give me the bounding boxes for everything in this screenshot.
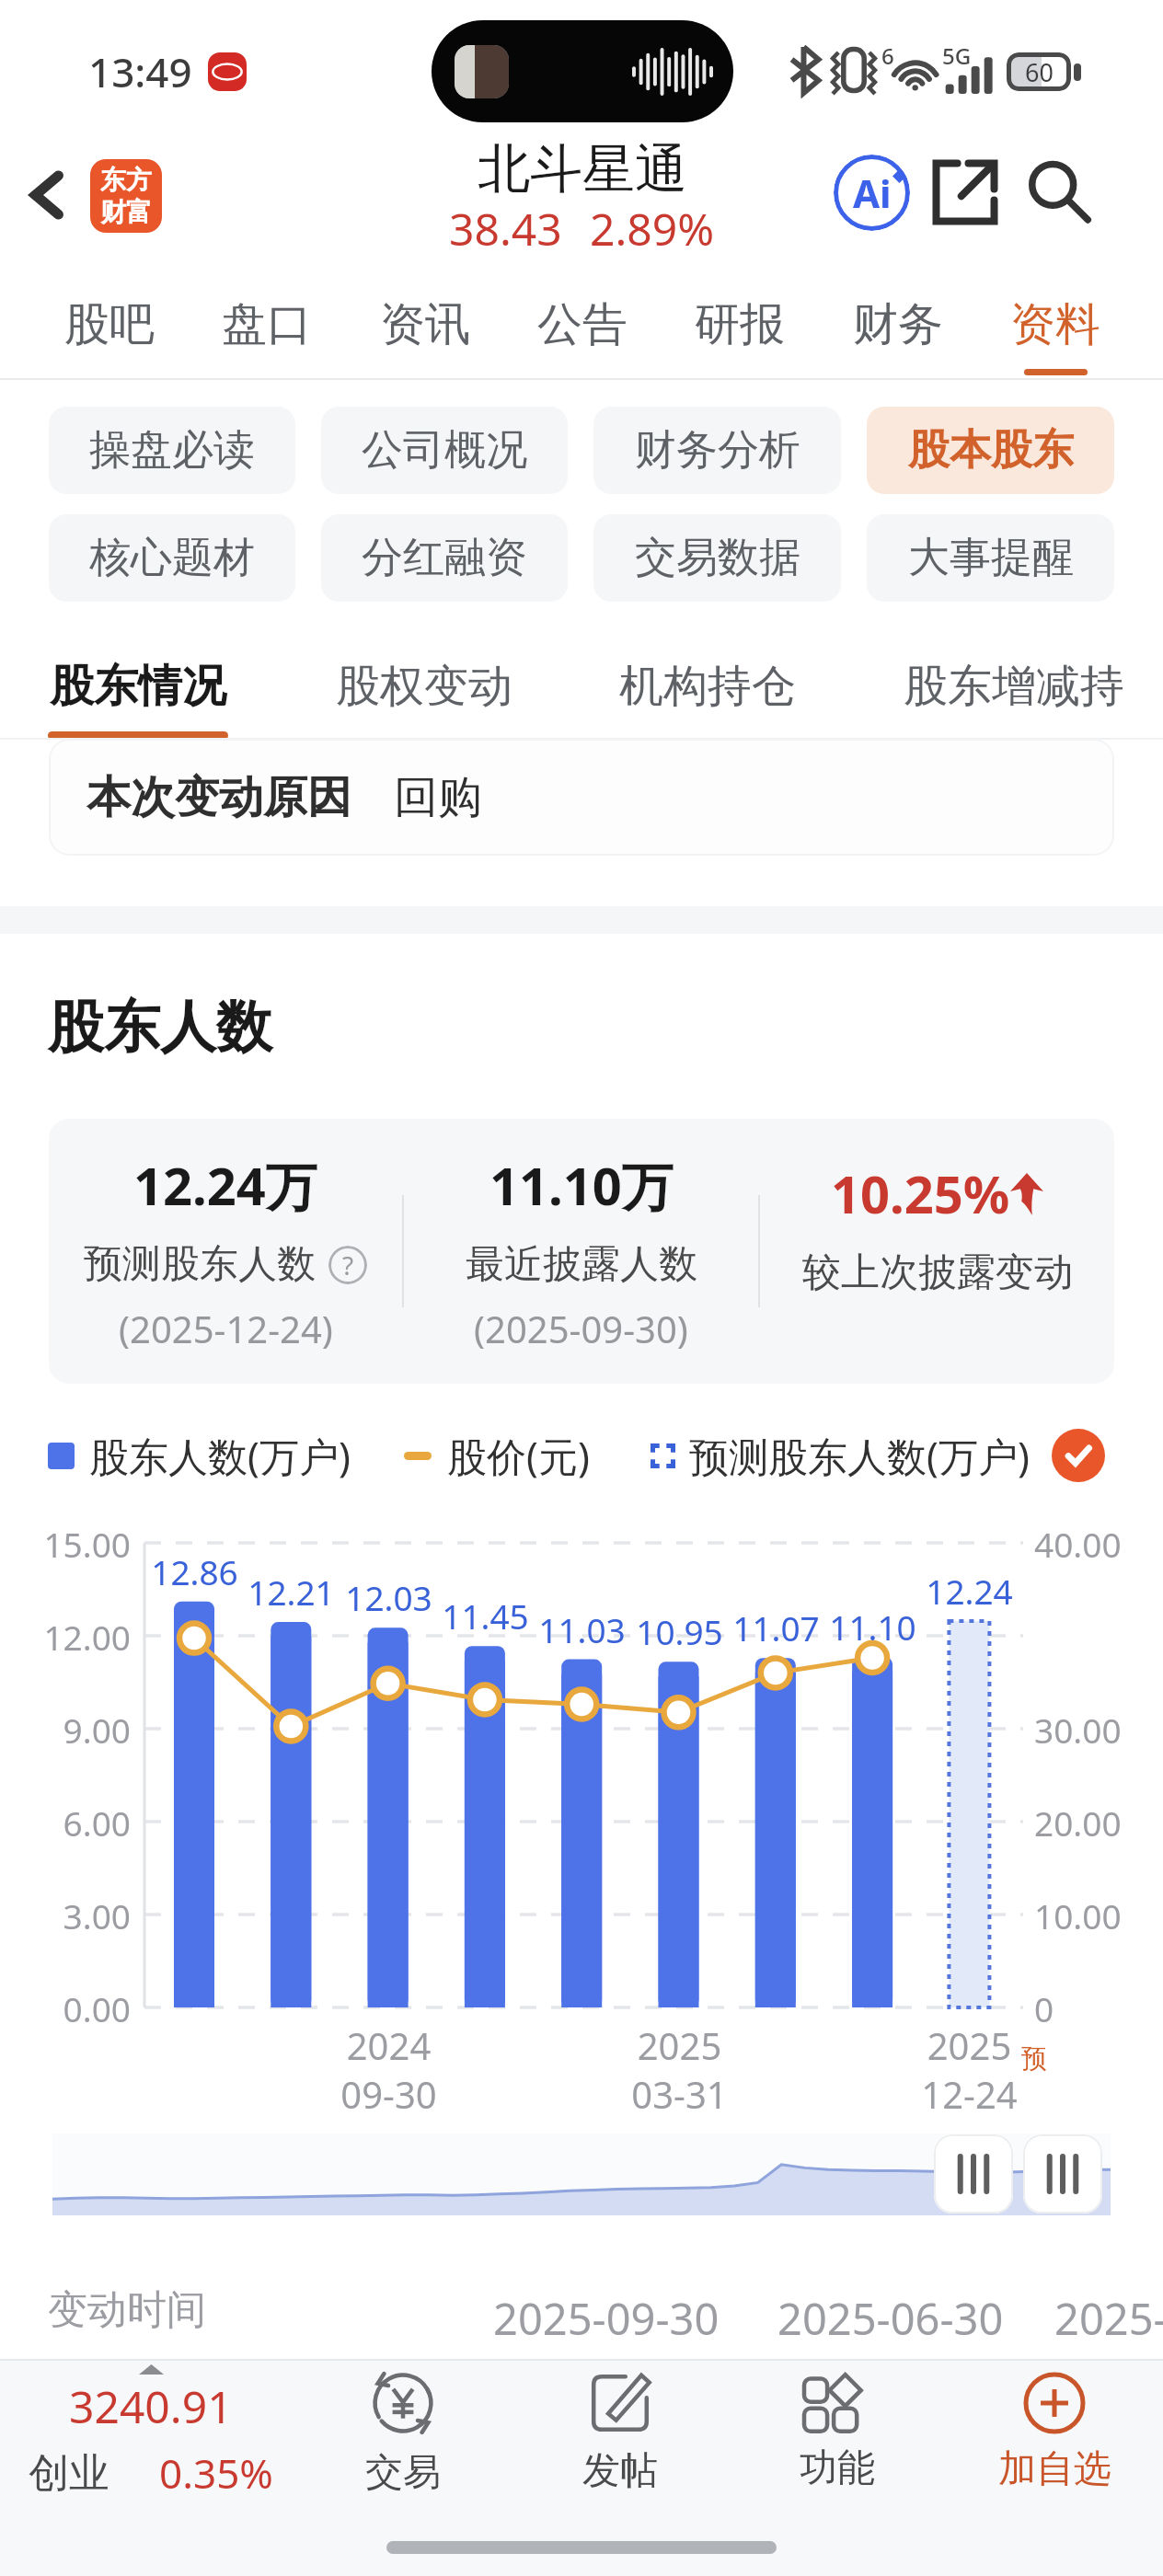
staticText: 公告 bbox=[537, 296, 628, 353]
button[interactable]: Help bbox=[328, 1246, 367, 1284]
staticText: 机构持仓 bbox=[619, 659, 796, 714]
staticText: 股东增减持 bbox=[904, 659, 1124, 714]
button[interactable]: 机构持仓 bbox=[619, 644, 796, 740]
staticText: 38.43 bbox=[449, 199, 562, 259]
staticText: 本次变动原因 bbox=[86, 770, 351, 825]
staticText: 操盘必读 bbox=[89, 424, 255, 477]
staticText: 北斗星通 bbox=[478, 136, 687, 202]
staticText: 核心题材 bbox=[89, 532, 255, 584]
button[interactable]: 股权变动 bbox=[336, 644, 512, 740]
staticText: 0.35% bbox=[159, 2445, 273, 2501]
staticText: 较上次披露变动 bbox=[802, 1248, 1073, 1297]
staticText: 9.00 bbox=[63, 1707, 131, 1753]
staticText: 6 bbox=[881, 40, 894, 71]
staticText: 预测股东人数(万户) bbox=[689, 1429, 1030, 1483]
staticText: 5G bbox=[942, 40, 972, 71]
staticText: 10.25% bbox=[831, 1158, 1010, 1228]
staticText: (2025-09-30) bbox=[474, 1304, 688, 1353]
staticText: 创业 bbox=[29, 2448, 109, 2499]
button[interactable]: Range end handle bbox=[1023, 2134, 1102, 2214]
button[interactable]: 财务 bbox=[853, 269, 943, 380]
button[interactable]: 加自选 bbox=[946, 2372, 1163, 2493]
button[interactable]: 公司概况 bbox=[321, 407, 568, 494]
staticText: 股吧 bbox=[64, 296, 155, 353]
button[interactable]: East Money home bbox=[90, 159, 162, 233]
staticText: 2.89% bbox=[590, 199, 715, 259]
staticText: 11.07 bbox=[732, 1604, 820, 1650]
staticText: 功能 bbox=[800, 2444, 875, 2492]
staticText: 11.03 bbox=[538, 1606, 626, 1652]
staticText: 研报 bbox=[695, 296, 785, 353]
button[interactable]: 交易 bbox=[294, 2368, 512, 2497]
button[interactable]: 股东情况 bbox=[48, 644, 228, 740]
staticText: 盘口 bbox=[222, 296, 312, 353]
staticText: 预测股东人数 bbox=[84, 1240, 316, 1289]
button[interactable]: 股本股东 bbox=[867, 407, 1114, 494]
staticText: 交易数据 bbox=[635, 532, 800, 584]
staticText: 股权变动 bbox=[336, 659, 512, 714]
staticText: 资料 bbox=[1010, 296, 1100, 353]
staticText: 12.03 bbox=[345, 1574, 432, 1620]
staticText: 公司概况 bbox=[362, 424, 527, 477]
staticText: 12.24 bbox=[926, 1568, 1013, 1614]
staticText: 大事提醒 bbox=[908, 532, 1074, 584]
staticText: 2025-0 bbox=[1054, 2289, 1163, 2344]
staticText: 12.00 bbox=[43, 1614, 131, 1660]
button[interactable]: 分红融资 bbox=[321, 514, 568, 602]
button[interactable]: 研报 bbox=[695, 269, 785, 380]
staticText: 11.10万 bbox=[489, 1150, 674, 1220]
button[interactable]: 公告 bbox=[537, 269, 628, 380]
staticText: 回购 bbox=[394, 770, 482, 825]
button[interactable]: Share bbox=[918, 145, 1012, 239]
staticText: 11.10 bbox=[829, 1604, 916, 1650]
staticText: 最近披露人数 bbox=[466, 1240, 697, 1289]
staticText: 2025-09-30 bbox=[493, 2289, 720, 2344]
button[interactable]: 核心题材 bbox=[49, 514, 295, 602]
button[interactable]: 操盘必读 bbox=[49, 407, 295, 494]
staticText: 分红融资 bbox=[362, 532, 527, 584]
button[interactable]: AI assistant bbox=[824, 145, 918, 239]
staticText: 2025 12-24 bbox=[921, 2020, 1018, 2120]
button[interactable]: 大事提醒 bbox=[867, 514, 1114, 602]
button[interactable]: Back bbox=[9, 158, 83, 232]
staticText: 发帖 bbox=[582, 2447, 658, 2495]
button[interactable]: Search bbox=[1012, 145, 1106, 239]
button[interactable]: Toggle forecast series bbox=[1052, 1429, 1105, 1482]
staticText: ? bbox=[342, 1248, 354, 1282]
button[interactable]: 资料 bbox=[1010, 269, 1100, 380]
staticText: 预 bbox=[1021, 2042, 1047, 2075]
button[interactable]: 资讯 bbox=[380, 269, 470, 380]
staticText: 40.00 bbox=[1034, 1521, 1122, 1567]
staticText: Ai bbox=[853, 167, 892, 219]
staticText: 股东人数(万户) bbox=[89, 1429, 351, 1483]
staticText: 11.45 bbox=[442, 1593, 529, 1639]
staticText: 加自选 bbox=[998, 2445, 1111, 2493]
button[interactable]: 发帖 bbox=[512, 2370, 729, 2495]
button[interactable]: 股吧 bbox=[64, 269, 155, 380]
staticText: 东方 bbox=[100, 164, 152, 196]
button[interactable]: 股东增减持 bbox=[904, 644, 1124, 740]
staticText: 资讯 bbox=[380, 296, 470, 353]
staticText: 股东情况 bbox=[50, 659, 226, 714]
staticText: 60 bbox=[1025, 55, 1054, 89]
staticText: 12.24万 bbox=[133, 1150, 317, 1220]
staticText: 财务 bbox=[853, 296, 943, 353]
button[interactable]: 交易数据 bbox=[593, 514, 841, 602]
button[interactable]: 财务分析 bbox=[593, 407, 841, 494]
staticText: 12.21 bbox=[248, 1569, 335, 1615]
button[interactable]: 功能 bbox=[729, 2373, 946, 2492]
staticText: 财务分析 bbox=[635, 424, 800, 477]
staticText: 12.86 bbox=[151, 1548, 238, 1594]
staticText: (2025-12-24) bbox=[119, 1304, 333, 1353]
staticText: 3.00 bbox=[63, 1892, 131, 1938]
staticText: 0 bbox=[1034, 1985, 1054, 2031]
staticText: 股本股东 bbox=[908, 424, 1074, 477]
staticText: 2024 09-30 bbox=[340, 2020, 437, 2120]
staticText: 2025 03-31 bbox=[631, 2020, 728, 2120]
staticText: 6.00 bbox=[63, 1800, 131, 1846]
button[interactable]: 3240.91 bbox=[4, 2364, 298, 2501]
staticText: 股价(元) bbox=[447, 1429, 590, 1483]
button[interactable]: 盘口 bbox=[222, 269, 312, 380]
button[interactable]: Range start handle bbox=[934, 2134, 1013, 2214]
staticText: 0.00 bbox=[63, 1985, 131, 2031]
